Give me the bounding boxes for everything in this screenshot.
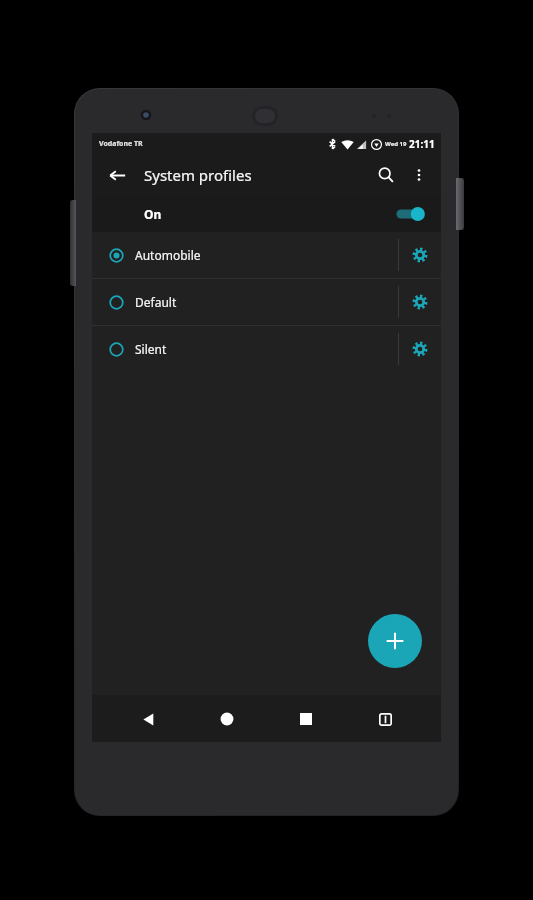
button[interactable]: Default <box>92 279 441 325</box>
button[interactable]: Profile settings for Silent <box>399 326 441 372</box>
button[interactable]: Search <box>369 158 403 192</box>
button[interactable]: Home <box>204 696 250 742</box>
button[interactable]: Add profile <box>368 614 422 668</box>
staticText: Silent <box>135 341 167 357</box>
staticText: Vodafone TR <box>99 139 143 149</box>
button[interactable]: Back <box>100 158 134 192</box>
button[interactable]: Profile settings for Default <box>399 279 441 325</box>
button[interactable]: On <box>92 195 441 232</box>
staticText: 21:11 <box>409 137 435 151</box>
button[interactable]: More options <box>403 159 435 191</box>
button[interactable]: Automobile <box>92 232 441 278</box>
button[interactable]: Recent apps <box>283 696 329 742</box>
staticText: Wed 19 <box>385 140 407 148</box>
staticText: Default <box>135 294 177 310</box>
staticText: Automobile <box>135 247 201 263</box>
staticText: On <box>144 206 162 222</box>
button[interactable]: Back <box>125 696 171 742</box>
button[interactable]: Split screen <box>362 696 408 742</box>
button[interactable]: Profile settings for Automobile <box>399 232 441 278</box>
button[interactable]: Silent <box>92 326 441 372</box>
staticText: System profiles <box>144 165 252 185</box>
